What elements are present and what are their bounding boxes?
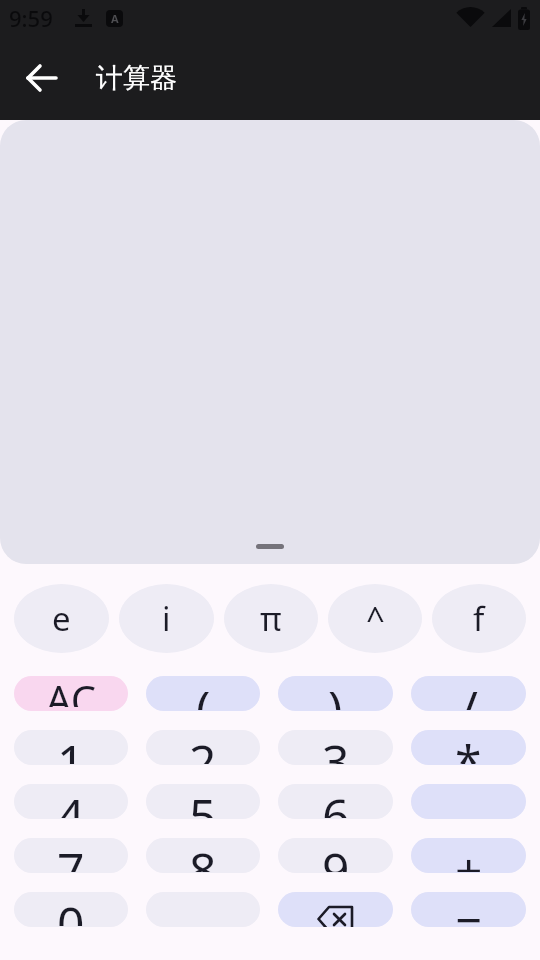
staticText: 0 [57, 892, 85, 926]
staticText: i [162, 596, 171, 641]
staticText: π [260, 596, 282, 641]
button[interactable]: ( [146, 676, 260, 711]
button[interactable]: = [411, 892, 526, 927]
staticText: / [460, 676, 478, 710]
staticText: ^ [366, 596, 385, 641]
staticText: 2 [189, 730, 217, 764]
button[interactable]: π [224, 584, 318, 653]
button[interactable]: 2 [146, 730, 260, 765]
button[interactable]: 5 [146, 784, 260, 819]
staticText: = [455, 892, 483, 926]
button[interactable]: 3 [278, 730, 393, 765]
button[interactable]: 9 [278, 838, 393, 873]
staticText: 4 [57, 784, 85, 818]
staticText: + [455, 838, 483, 872]
button[interactable]: ^ [328, 584, 422, 653]
button[interactable]: 7 [14, 838, 128, 873]
staticText: 7 [57, 838, 85, 872]
button[interactable]: 6 [278, 784, 393, 819]
staticText: ) [328, 676, 343, 710]
staticText: 8 [189, 838, 217, 872]
button[interactable]: 4 [14, 784, 128, 819]
staticText: 5 [189, 784, 217, 818]
staticText: * [455, 730, 482, 764]
button[interactable] [278, 892, 393, 927]
staticText: 6 [322, 784, 350, 818]
button[interactable]: AC [14, 676, 128, 711]
button[interactable]: 8 [146, 838, 260, 873]
button[interactable]: - [411, 784, 526, 819]
button[interactable]: . [146, 892, 260, 927]
button[interactable] [26, 62, 58, 94]
staticText: AC [46, 676, 97, 707]
staticText: e [52, 596, 71, 641]
staticText: ( [196, 676, 211, 710]
button[interactable]: / [411, 676, 526, 711]
staticText: 3 [322, 730, 350, 764]
staticText: A [111, 11, 119, 26]
button[interactable]: e [14, 584, 109, 653]
button[interactable]: i [119, 584, 214, 653]
button[interactable]: 0 [14, 892, 128, 927]
button[interactable]: + [411, 838, 526, 873]
staticText: f [473, 596, 485, 641]
button[interactable]: 1 [14, 730, 128, 765]
button[interactable]: * [411, 730, 526, 765]
staticText: 9:59 [9, 3, 53, 33]
staticText: 1 [57, 730, 85, 764]
staticText: 9 [322, 838, 350, 872]
button[interactable]: f [432, 584, 526, 653]
staticText: 计算器 [96, 61, 177, 95]
button[interactable]: ) [278, 676, 393, 711]
